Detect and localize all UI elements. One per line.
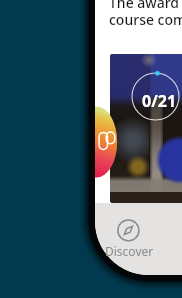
staticText: 0/21 <box>142 90 177 112</box>
staticText: The award winning <box>109 0 182 12</box>
button[interactable]: Course, 0 of 21 complete <box>110 54 182 203</box>
button[interactable]: Discover <box>103 214 156 262</box>
staticText: course completely <box>109 10 182 29</box>
staticText: Discover <box>105 243 154 259</box>
